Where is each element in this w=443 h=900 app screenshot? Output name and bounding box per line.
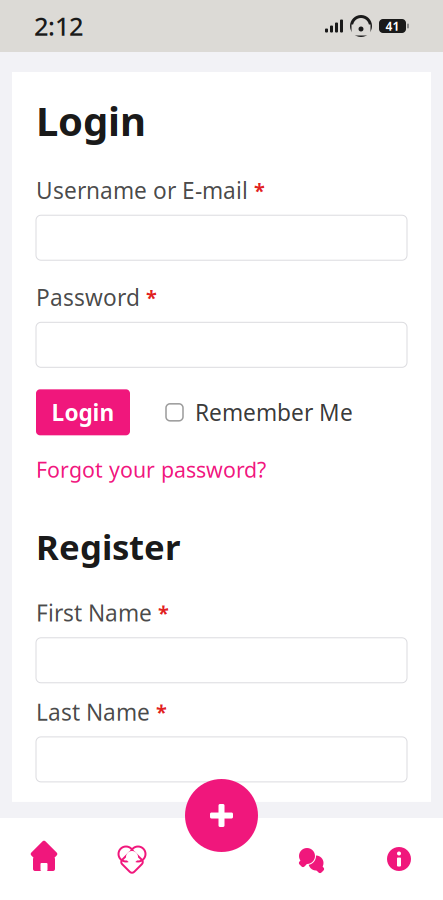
staticText: *: [156, 699, 167, 725]
staticText: Forgot your password?: [36, 455, 266, 484]
button[interactable]: Info: [355, 818, 443, 900]
button[interactable]: Remember Me: [166, 397, 353, 427]
staticText: Login: [36, 94, 146, 147]
staticText: *: [146, 284, 157, 311]
button[interactable]: Forgot your password?: [36, 455, 266, 484]
staticText: First Name: [36, 598, 152, 628]
button[interactable]: Login: [36, 389, 130, 435]
staticText: Login: [51, 397, 114, 427]
staticText: Last Name: [36, 697, 150, 727]
staticText: Register: [36, 524, 180, 570]
button[interactable]: Messages: [267, 818, 355, 900]
staticText: 41: [385, 18, 399, 34]
button[interactable]: Add: [185, 779, 258, 852]
staticText: Remember Me: [195, 397, 353, 427]
staticText: *: [158, 599, 169, 626]
staticText: *: [254, 177, 265, 203]
button[interactable]: Favorites: [88, 818, 176, 900]
staticText: Password: [36, 282, 140, 312]
staticText: 2:12: [34, 9, 83, 43]
button[interactable]: Home: [0, 818, 88, 900]
staticText: Username or E-mail: [36, 175, 248, 205]
